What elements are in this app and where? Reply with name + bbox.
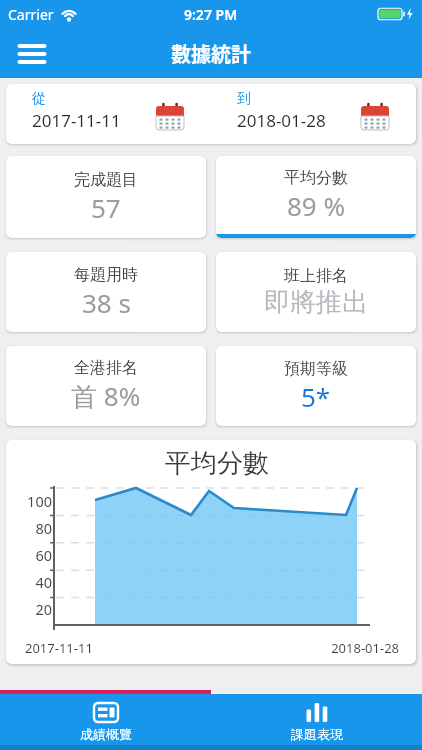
staticText: 預期等級 [284,359,348,379]
staticText: 班上排名 [284,266,348,286]
staticText: 首 8% [71,378,141,414]
staticText: 100 [12,491,52,511]
button[interactable]: 完成題目 [6,156,206,238]
button[interactable]: 到 [211,84,416,144]
staticText: 到 [237,90,251,108]
staticText: 每題用時 [74,265,138,285]
staticText: 2018-01-28 [237,109,326,132]
staticText: 平均分數 [284,168,348,188]
staticText: 60 [12,545,52,565]
staticText: 即將推出 [264,286,368,319]
staticText: 數據統計 [171,39,251,68]
staticText: 9:27 PM [184,5,238,24]
button[interactable]: 平均分數 [216,156,416,238]
staticText: 38 s [82,285,131,320]
staticText: 20 [12,599,52,619]
staticText: 課題表現 [291,726,343,742]
staticText: 成績概覽 [80,726,132,742]
staticText: 平均分數 [165,447,269,480]
staticText: 57 [91,190,121,225]
button[interactable]: 成績概覽 [0,694,211,750]
staticText: Carrier [8,5,54,24]
staticText: 80 [12,518,52,538]
button[interactable] [10,33,54,77]
staticText: 89 % [287,188,346,223]
button[interactable]: 預期等級 [216,346,416,426]
staticText: 2017-11-11 [25,639,93,657]
button[interactable]: 課題表現 [211,694,422,750]
staticText: 40 [12,572,52,592]
button[interactable]: 全港排名 [6,346,206,426]
button[interactable]: 班上排名 [216,252,416,332]
staticText: 完成題目 [74,170,138,190]
staticText: 5* [301,379,331,414]
staticText: 全港排名 [74,358,138,378]
staticText: 從 [32,90,46,108]
button[interactable]: 從 [6,84,211,144]
staticText: 2018-01-28 [319,639,399,657]
button[interactable]: 每題用時 [6,252,206,332]
staticText: 2017-11-11 [32,109,121,132]
